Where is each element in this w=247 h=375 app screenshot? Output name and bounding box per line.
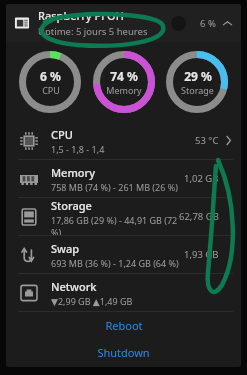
staticText: 693 MB (36 %) - 1,24 GB (64 %) [51,257,179,269]
staticText: Memory [51,165,96,180]
staticText: 53 °C [195,134,219,147]
button[interactable]: 6 % [15,47,85,117]
button[interactable]: Shutdown [6,339,241,366]
staticText: 1,02 GB [184,172,219,185]
button[interactable]: CPU [6,122,241,159]
staticText: CPU [42,84,60,96]
staticText: 62,78 GB [179,210,219,223]
button[interactable]: Reboot [6,312,241,339]
staticText: 758 MB (74 %) - 261 MB (26 %) [51,181,178,193]
staticText: Swap [51,241,80,256]
button[interactable]: Collapse [221,17,233,29]
staticText: ▼2,99 GB ▲1,49 GB [51,295,133,307]
staticText: Uptime: 5 jours 5 heures [38,25,148,38]
staticText: 17,86 GB (29 %) - 44,91 GB (72 %) [51,214,179,235]
button[interactable]: Status [171,16,186,31]
staticText: Memory [106,84,142,96]
staticText: Raspberry Pi OH [38,8,124,23]
button[interactable]: Swap [6,236,241,273]
staticText: CPU [51,127,73,142]
button[interactable]: Raspberry Pi OH [6,4,241,42]
button[interactable]: 74 % [89,47,159,117]
staticText: Shutdown [97,345,150,360]
button[interactable]: Storage [6,198,241,235]
staticText: 6 % [200,17,216,30]
staticText: 29 % [184,68,212,84]
button[interactable]: Network [6,274,241,311]
button[interactable]: 29 % [162,47,232,117]
staticText: Storage [181,84,214,96]
button[interactable]: Memory [6,160,241,197]
staticText: Network [51,279,97,294]
staticText: Storage [51,198,92,213]
staticText: 74 % [110,68,138,84]
staticText: 1,5 - 1,8 - 1,4 [51,143,105,155]
staticText: 6 % [40,68,61,84]
staticText: Reboot [105,318,143,333]
staticText: 1,93 GB [184,248,219,261]
